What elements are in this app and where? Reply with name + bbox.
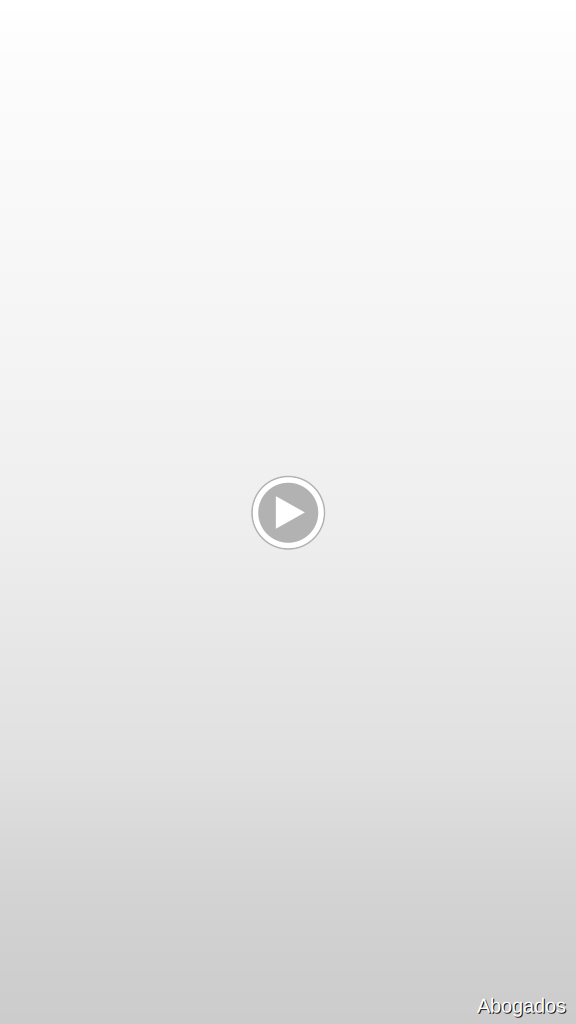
- staticText: Abogados: [477, 995, 566, 1017]
- button[interactable]: Play: [250, 475, 326, 551]
- staticText: Abogados: [478, 996, 567, 1018]
